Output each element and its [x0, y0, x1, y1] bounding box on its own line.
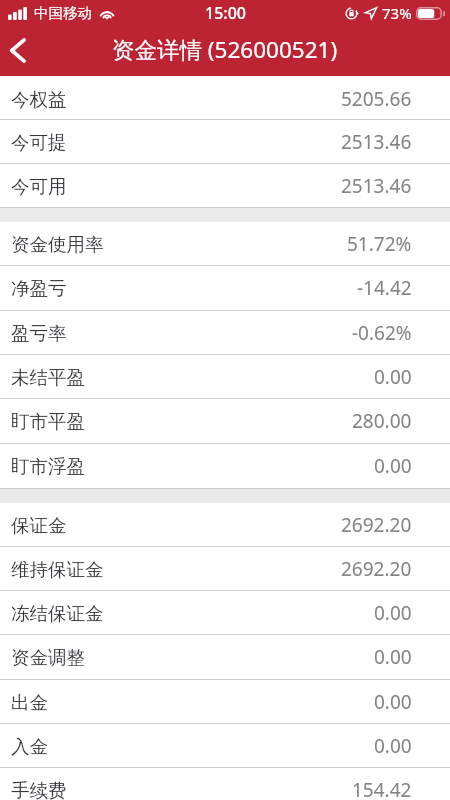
- staticText: 51.72%: [347, 231, 412, 257]
- staticText: 维持保证金: [11, 558, 104, 581]
- staticText: 今可提: [11, 131, 67, 154]
- staticText: 未结平盈: [11, 366, 85, 389]
- button[interactable]: 今可用: [0, 164, 450, 208]
- staticText: 今可用: [11, 175, 67, 198]
- staticText: 280.00: [352, 408, 412, 434]
- staticText: 中国移动: [34, 4, 92, 22]
- button[interactable]: 资金使用率: [0, 222, 450, 266]
- staticText: 0.00: [374, 453, 412, 479]
- button[interactable]: 今权益: [0, 77, 450, 121]
- button[interactable]: 冻结保证金: [0, 591, 450, 635]
- staticText: 今权益: [11, 88, 67, 111]
- staticText: 手续费: [11, 779, 67, 800]
- staticText: 0.00: [374, 689, 412, 715]
- staticText: 2513.46: [341, 173, 412, 199]
- staticText: 0.00: [374, 644, 412, 670]
- button[interactable]: 盈亏率: [0, 311, 450, 355]
- staticText: 入金: [11, 735, 48, 758]
- staticText: 保证金: [11, 514, 67, 537]
- staticText: 2692.20: [341, 512, 412, 538]
- button[interactable]: 维持保证金: [0, 547, 450, 591]
- button[interactable]: 盯市平盈: [0, 399, 450, 443]
- button[interactable]: 净盈亏: [0, 266, 450, 310]
- staticText: 资金调整: [11, 646, 85, 669]
- staticText: 5205.66: [341, 86, 412, 112]
- staticText: 0.00: [374, 364, 412, 390]
- button[interactable]: 未结平盈: [0, 355, 450, 399]
- button[interactable]: 保证金: [0, 503, 450, 547]
- button[interactable]: 出金: [0, 680, 450, 724]
- button[interactable]: 盯市浮盈: [0, 444, 450, 488]
- button[interactable]: 今可提: [0, 120, 450, 164]
- staticText: 资金详情 (526000521): [112, 34, 338, 65]
- staticText: 0.00: [374, 600, 412, 626]
- staticText: 盈亏率: [11, 322, 67, 345]
- staticText: 冻结保证金: [11, 602, 104, 625]
- staticText: 73%: [382, 3, 412, 23]
- staticText: 154.42: [352, 777, 412, 800]
- staticText: -14.42: [357, 275, 412, 301]
- staticText: 2692.20: [341, 556, 412, 582]
- staticText: 15:00: [205, 2, 246, 24]
- staticText: 0.00: [374, 733, 412, 759]
- button[interactable]: 资金调整: [0, 635, 450, 679]
- staticText: -0.62%: [352, 320, 412, 346]
- staticText: 资金使用率: [11, 233, 104, 256]
- staticText: 净盈亏: [11, 277, 67, 300]
- button[interactable]: 手续费: [0, 768, 450, 800]
- staticText: 2513.46: [341, 129, 412, 155]
- staticText: 盯市浮盈: [11, 455, 85, 478]
- staticText: 盯市平盈: [11, 410, 85, 433]
- button[interactable]: 入金: [0, 724, 450, 768]
- staticText: 出金: [11, 691, 48, 714]
- button[interactable]: Back: [0, 25, 44, 76]
